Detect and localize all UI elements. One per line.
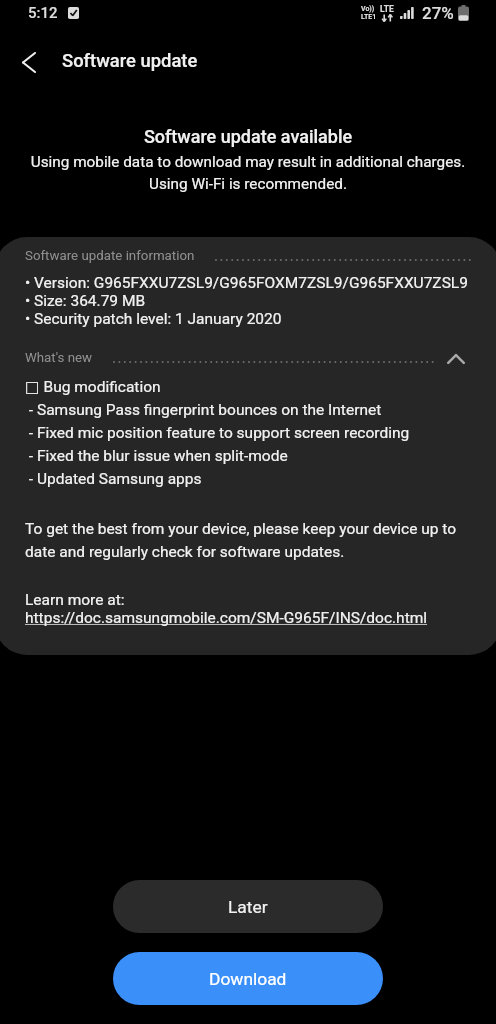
staticText: Software update [62,50,198,72]
staticText: Download [209,969,287,989]
staticText: LTE [380,4,394,14]
button[interactable]: Download [113,952,383,1005]
button[interactable]: Back [5,38,53,86]
button[interactable]: Collapse What's new [443,346,469,372]
staticText: Later [228,897,268,917]
staticText: LTE1 [361,13,377,21]
staticText: 5:12 [28,4,58,22]
staticText: Learn more at: [25,591,471,609]
staticText: What's new [25,350,93,366]
staticText: To get the best from your device, please… [25,520,471,561]
staticText: Using mobile data to download may result… [0,153,496,193]
button[interactable]: https://doc.samsungmobile.com/SM-G965F/I… [25,609,428,627]
staticText: • Version: G965FXXU7ZSL9/G965FOXM7ZSL9/G… [25,274,471,328]
staticText: □ Bug modification - Samsung Pass finger… [25,378,471,488]
staticText: Software update information [25,248,195,264]
button[interactable]: Later [113,880,383,933]
staticText: 27% [422,3,454,23]
staticText: Vo)) [361,5,375,13]
staticText: Software update available [0,126,496,147]
